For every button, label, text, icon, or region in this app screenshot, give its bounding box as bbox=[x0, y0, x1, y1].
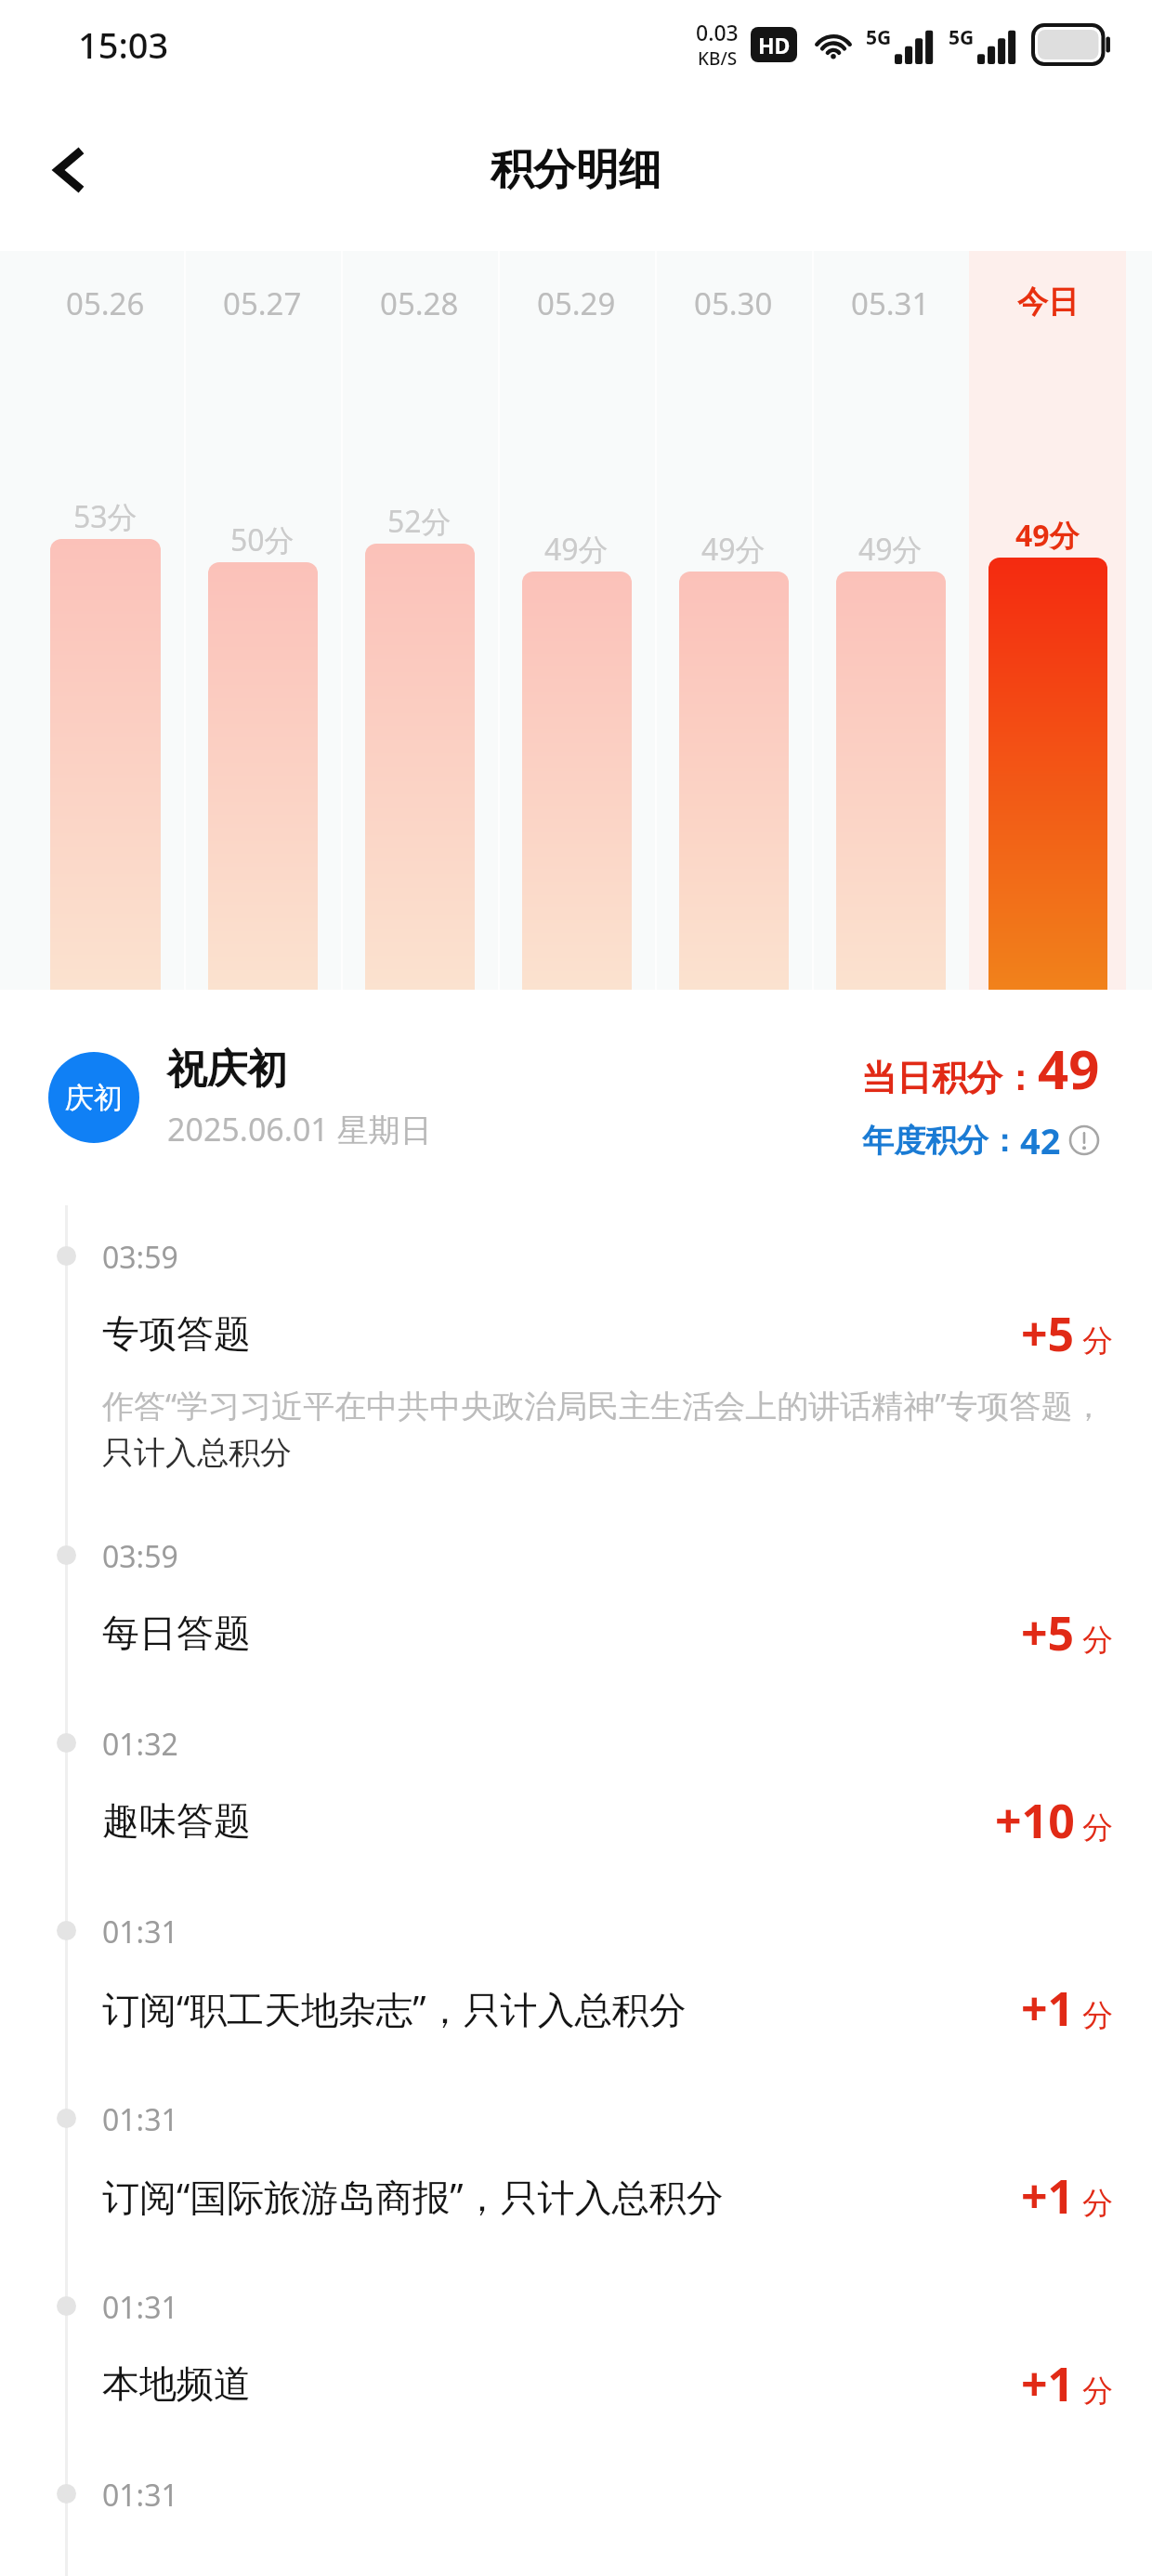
staticText: 01:32 bbox=[102, 1724, 178, 1765]
staticText: 03:59 bbox=[102, 1237, 178, 1278]
staticText: 0.03 bbox=[696, 18, 739, 46]
staticText: 祝庆初 bbox=[167, 1045, 287, 1095]
staticText: 52分 bbox=[387, 501, 452, 542]
button[interactable]: 03:59 bbox=[0, 1205, 1152, 1505]
staticText: 50分 bbox=[230, 519, 295, 560]
staticText: 01:31 bbox=[102, 2287, 178, 2328]
staticText: HD bbox=[758, 31, 791, 59]
staticText: 分 bbox=[1082, 1321, 1113, 1360]
staticText: 49分 bbox=[544, 529, 609, 570]
staticText: +5 bbox=[1021, 1302, 1075, 1365]
staticText: +1 bbox=[1021, 1977, 1075, 2040]
staticText: 今日 bbox=[1017, 283, 1079, 322]
staticText: 49分 bbox=[1015, 515, 1080, 556]
staticText: KB/S bbox=[698, 46, 738, 71]
staticText: +1 bbox=[1021, 2164, 1075, 2228]
button[interactable]: 年度积分： bbox=[862, 1116, 1100, 1164]
staticText: 作答“学习习近平在中共中央政治局民主生活会上的讲话精神”专项答题，只计入总积分 bbox=[102, 1384, 1113, 1473]
button[interactable]: 05.31 bbox=[812, 251, 969, 990]
staticText: 当日积分： bbox=[861, 1056, 1038, 1100]
staticText: 15:03 bbox=[78, 20, 169, 69]
staticText: 05.29 bbox=[537, 283, 616, 324]
button[interactable]: 05.28 bbox=[341, 251, 498, 990]
staticText: 趣味答题 bbox=[102, 1797, 251, 1844]
staticText: 2025.06.01 星期日 bbox=[167, 1108, 432, 1150]
button[interactable]: 头像 bbox=[48, 1052, 139, 1143]
other: 说明 bbox=[1068, 1124, 1100, 1156]
staticText: 01:31 bbox=[102, 2475, 178, 2516]
staticText: 5G bbox=[866, 24, 892, 51]
button[interactable]: 01:31 bbox=[0, 2255, 1152, 2443]
button[interactable]: 01:31 bbox=[0, 2443, 1152, 2576]
button[interactable]: Back bbox=[24, 125, 115, 216]
staticText: +1 bbox=[1021, 2352, 1075, 2415]
staticText: 订阅“职工天地杂志”，只计入总积分 bbox=[102, 1983, 687, 2034]
staticText: 5G bbox=[949, 24, 975, 51]
staticText: +5 bbox=[1021, 1601, 1075, 1664]
staticText: 每日答题 bbox=[102, 1610, 251, 1656]
staticText: 05.26 bbox=[66, 283, 145, 324]
button[interactable]: 01:31 bbox=[0, 2068, 1152, 2255]
button[interactable]: 03:59 bbox=[0, 1505, 1152, 1692]
button[interactable]: 01:32 bbox=[0, 1692, 1152, 1880]
staticText: 订阅“国际旅游岛商报”，只计入总积分 bbox=[102, 2171, 724, 2222]
staticText: 分 bbox=[1082, 2184, 1113, 2223]
button[interactable]: 05.26 bbox=[26, 251, 184, 990]
staticText: 专项答题 bbox=[102, 1310, 251, 1357]
button[interactable]: 05.29 bbox=[498, 251, 655, 990]
button[interactable]: 05.27 bbox=[184, 251, 341, 990]
staticText: 49分 bbox=[701, 529, 766, 570]
staticText: 05.30 bbox=[694, 283, 773, 324]
staticText: 42 bbox=[1020, 1116, 1061, 1164]
staticText: 03:59 bbox=[102, 1536, 178, 1577]
staticText: +10 bbox=[995, 1789, 1075, 1852]
staticText: 分 bbox=[1082, 1621, 1113, 1660]
staticText: 本地频道 bbox=[102, 2360, 251, 2407]
staticText: 01:31 bbox=[102, 2099, 178, 2140]
staticText: 分 bbox=[1082, 1808, 1113, 1847]
staticText: 庆初 bbox=[65, 1080, 123, 1116]
button[interactable]: 05.30 bbox=[655, 251, 812, 990]
staticText: 分 bbox=[1082, 1996, 1113, 2035]
staticText: 49 bbox=[1038, 1032, 1100, 1105]
staticText: 分 bbox=[1082, 2372, 1113, 2411]
staticText: 积分明细 bbox=[491, 143, 661, 197]
staticText: 年度积分： bbox=[862, 1121, 1020, 1161]
staticText: 01:31 bbox=[102, 1912, 178, 1952]
staticText: 05.28 bbox=[380, 283, 459, 324]
button[interactable]: 01:31 bbox=[0, 1880, 1152, 2068]
button[interactable]: 今日 bbox=[969, 251, 1126, 990]
staticText: 05.27 bbox=[223, 283, 302, 324]
staticText: 05.31 bbox=[851, 283, 930, 324]
staticText: 49分 bbox=[858, 529, 923, 570]
staticText: 53分 bbox=[73, 496, 137, 537]
